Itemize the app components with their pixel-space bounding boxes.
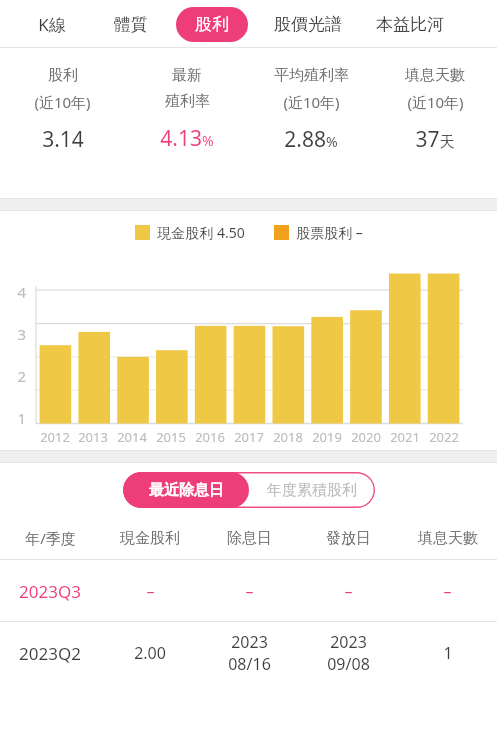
button[interactable]: 填息天數 [373,48,497,196]
staticText: 年/季度 [25,528,76,548]
staticText: (近10年) [34,92,91,112]
button[interactable]: 最新 [125,48,249,196]
staticText: 殖利率 [165,92,210,111]
staticText: 2012 [40,428,70,446]
staticText: 2023Q3 [19,580,81,603]
staticText: 最近除息日 [149,481,224,500]
staticText: 37天 [415,125,455,154]
staticText: 股利 [48,66,78,85]
button[interactable]: 平均殖利率 [249,48,373,196]
staticText: 本益比河 [376,14,444,35]
staticText: 現金股利 [120,529,180,548]
button[interactable]: 最近除息日 [123,472,249,508]
staticText: 股價光譜 [274,14,342,35]
staticText: 2023Q2 [19,642,81,665]
staticText: (近10年) [407,92,464,112]
staticText: 2016 [195,428,225,446]
staticText: 2013 [78,428,108,446]
staticText: 2023 09/08 [327,631,370,675]
staticText: 2.88% [284,125,338,154]
staticText: 填息天數 [405,66,465,85]
staticText: 2015 [156,428,186,446]
staticText: (近10年) [283,92,340,112]
staticText: – [443,580,452,602]
staticText: 3 [8,324,26,344]
staticText: 2022 [429,428,459,446]
staticText: 股票股利 – [296,223,363,242]
staticText: 股利 [195,14,229,35]
staticText: 2017 [234,428,264,446]
button[interactable]: 股價光譜 [272,8,344,41]
staticText: 年度累積股利 [267,481,357,500]
staticText: 填息天數 [418,529,478,548]
staticText: 2023 08/16 [228,631,271,675]
staticText: 2 [8,366,26,386]
staticText: K線 [38,13,66,36]
staticText: 4 [8,282,26,302]
button[interactable]: 2023Q2 [0,622,497,684]
staticText: 2018 [273,428,303,446]
staticText: 2.00 [134,642,166,664]
staticText: 體質 [114,14,148,35]
staticText: 現金股利 4.50 [157,223,245,242]
button[interactable]: 股利 [176,7,248,42]
staticText: 1 [8,408,26,428]
staticText: – [146,580,155,602]
button[interactable]: 股利 [0,48,125,196]
button[interactable]: 年度累積股利 [249,472,375,508]
button[interactable]: 2023Q3 [0,560,497,622]
staticText: 2019 [312,428,342,446]
staticText: – [344,580,353,602]
staticText: 2020 [351,428,381,446]
button[interactable]: 本益比河 [374,8,446,41]
staticText: 1 [443,642,453,664]
staticText: 發放日 [326,529,371,548]
staticText: 3.14 [42,125,84,154]
staticText: 2021 [390,428,420,446]
staticText: – [245,580,254,602]
staticText: 平均殖利率 [274,66,349,85]
button[interactable]: 體質 [112,8,150,41]
staticText: 2014 [117,428,147,446]
staticText: 除息日 [227,529,272,548]
button[interactable]: K線 [36,7,68,42]
staticText: 最新 [172,66,202,85]
staticText: 4.13% [160,124,214,153]
